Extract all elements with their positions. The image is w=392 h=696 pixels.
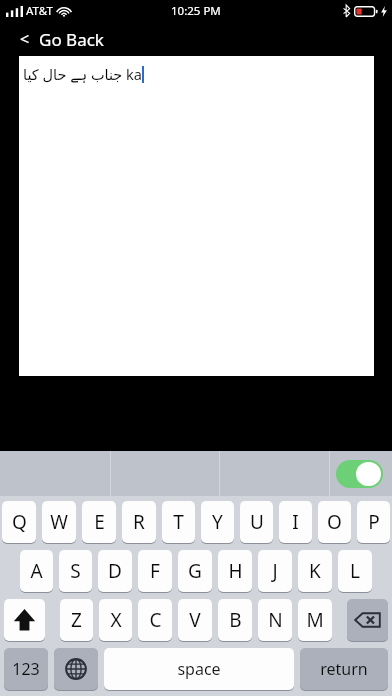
button[interactable]: B	[218, 599, 252, 641]
staticText: G	[188, 558, 202, 584]
staticText: I	[292, 509, 299, 535]
button[interactable]: L	[338, 550, 372, 592]
button[interactable]: D	[98, 550, 132, 592]
staticText: Y	[212, 509, 223, 535]
staticText: C	[149, 607, 162, 633]
button[interactable]: Toggle keyboard option	[336, 460, 383, 488]
button[interactable]: Backspace	[347, 599, 388, 641]
button[interactable]: X	[99, 599, 132, 641]
staticText: W	[50, 509, 68, 535]
button[interactable]: <	[0, 22, 392, 56]
button[interactable]: V	[178, 599, 212, 641]
staticText: F	[150, 558, 160, 584]
staticText: H	[228, 558, 243, 584]
button[interactable]: H	[218, 550, 252, 592]
staticText: 123	[12, 658, 40, 680]
staticText: E	[94, 509, 105, 535]
staticText: J	[272, 558, 278, 584]
button[interactable]: Q	[2, 501, 36, 543]
staticText: L	[350, 558, 360, 584]
staticText: T	[173, 509, 184, 535]
staticText: R	[133, 509, 145, 535]
staticText: Go Back	[39, 28, 104, 51]
staticText: X	[110, 607, 122, 633]
button[interactable]: Y	[201, 501, 234, 543]
button[interactable]: S	[59, 550, 92, 592]
staticText: B	[229, 607, 242, 633]
staticText: S	[70, 558, 81, 584]
staticText: Z	[71, 607, 82, 633]
staticText: space	[177, 658, 221, 680]
button[interactable]: N	[258, 599, 292, 641]
button[interactable]: R	[122, 501, 156, 543]
staticText: K	[309, 558, 321, 584]
staticText: جناب ہے حال کیا ka	[23, 64, 142, 84]
button[interactable]: Switch keyboard language	[54, 648, 98, 690]
button[interactable]: جناب ہے حال کیا ka	[19, 56, 374, 376]
button[interactable]: Z	[60, 599, 93, 641]
button[interactable]: E	[82, 501, 116, 543]
button[interactable]: C	[138, 599, 172, 641]
staticText: O	[327, 509, 342, 535]
button[interactable]: K	[298, 550, 332, 592]
button[interactable]: G	[178, 550, 212, 592]
button[interactable]: O	[318, 501, 351, 543]
staticText: P	[368, 509, 380, 535]
button[interactable]: W	[42, 501, 76, 543]
staticText: Q	[12, 509, 27, 535]
button[interactable]: M	[298, 599, 332, 641]
staticText: N	[268, 607, 283, 633]
button[interactable]: P	[357, 501, 390, 543]
staticText: return	[320, 658, 368, 680]
staticText: D	[108, 558, 122, 584]
staticText: 10:25 PM	[171, 3, 221, 19]
button[interactable]: Shift	[4, 599, 45, 641]
button[interactable]: A	[20, 550, 53, 592]
button[interactable]: U	[240, 501, 273, 543]
button[interactable]: F	[138, 550, 172, 592]
staticText: <	[20, 28, 30, 50]
button[interactable]: J	[258, 550, 292, 592]
button[interactable]: space	[104, 648, 294, 690]
staticText: AT&T	[26, 3, 53, 19]
button[interactable]: return	[300, 648, 388, 690]
staticText: V	[189, 607, 201, 633]
button[interactable]: T	[162, 501, 195, 543]
staticText: A	[30, 558, 43, 584]
staticText: M	[306, 607, 324, 633]
button[interactable]: 123	[4, 648, 48, 690]
staticText: U	[250, 509, 264, 535]
button[interactable]: I	[279, 501, 312, 543]
